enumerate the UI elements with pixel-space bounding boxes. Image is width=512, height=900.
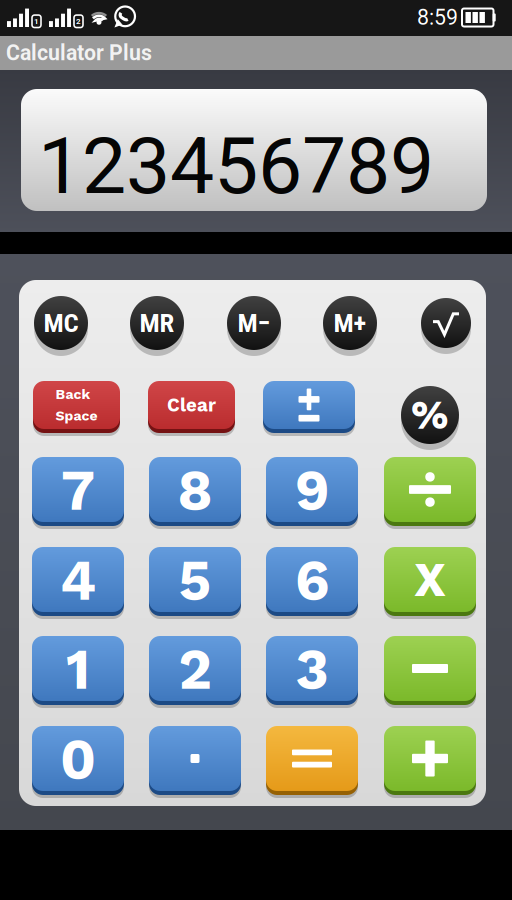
staticText: 8 (177, 458, 212, 523)
button[interactable]: Percent (396, 378, 464, 452)
staticText: 3 (295, 637, 328, 702)
button[interactable]: Divide (378, 449, 482, 530)
staticText: % (411, 391, 449, 438)
button[interactable]: Plus minus (257, 373, 361, 437)
button[interactable]: 0 (26, 718, 130, 799)
button[interactable]: Minus (378, 628, 482, 709)
staticText: MR (139, 307, 174, 339)
button[interactable]: 1 (26, 628, 130, 709)
button[interactable]: 2 (143, 628, 247, 709)
button[interactable]: Equals (260, 718, 364, 799)
staticText: 7 (61, 458, 95, 523)
button[interactable]: 8 (143, 449, 247, 530)
staticText: 5 (178, 548, 211, 613)
button[interactable]: MR (125, 288, 189, 358)
button[interactable]: 6 (260, 539, 364, 620)
button[interactable]: 9 (260, 449, 364, 530)
staticText: Back Space (55, 386, 97, 424)
button[interactable]: Square root (416, 290, 476, 356)
staticText: 8:59 (417, 5, 458, 30)
button[interactable]: 4 (26, 539, 130, 620)
staticText: X (414, 551, 446, 608)
staticText: 1 (34, 17, 39, 26)
staticText: 1 (66, 637, 90, 702)
button[interactable]: Decimal point (143, 718, 247, 799)
button[interactable]: 3 (260, 628, 364, 709)
staticText: 9 (295, 458, 329, 523)
button[interactable]: 7 (26, 449, 130, 530)
button[interactable]: Clear (142, 373, 241, 437)
staticText: Clear (167, 394, 216, 416)
staticText: MC (43, 307, 78, 339)
staticText: 4 (60, 548, 96, 613)
button[interactable]: MC (29, 288, 93, 358)
button[interactable]: Memory minus (222, 288, 286, 358)
staticText: 123456789 (38, 120, 434, 212)
button[interactable]: Plus (378, 718, 482, 799)
staticText: Calculator Plus (6, 40, 152, 65)
staticText: 2 (178, 637, 211, 702)
button[interactable]: 5 (143, 539, 247, 620)
staticText: 2 (76, 17, 81, 26)
staticText: 6 (295, 548, 329, 613)
staticText: M+ (333, 307, 366, 339)
staticText: M− (237, 307, 270, 339)
button[interactable]: Back Space (27, 373, 126, 437)
staticText: 0 (60, 727, 96, 792)
button[interactable]: Multiply (378, 539, 482, 620)
button[interactable]: Memory plus (318, 288, 382, 358)
